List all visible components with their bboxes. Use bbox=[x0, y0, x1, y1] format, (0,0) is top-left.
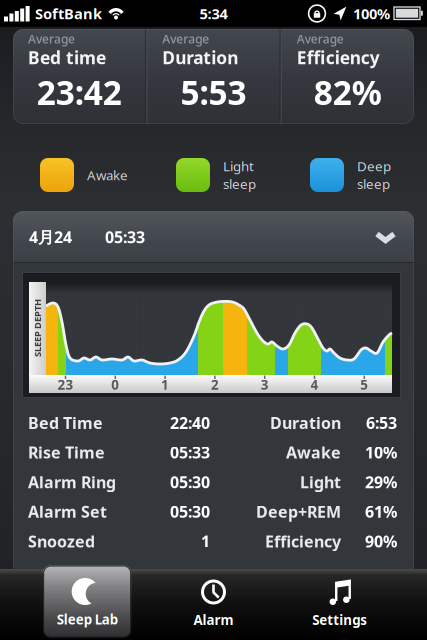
staticText: 05:33 bbox=[170, 442, 210, 463]
staticText: Light bbox=[300, 471, 341, 493]
button[interactable]: Sleep Lab bbox=[24, 568, 150, 640]
staticText: Average bbox=[28, 31, 75, 47]
staticText: 5:53 bbox=[180, 70, 246, 114]
staticText: 22:40 bbox=[170, 412, 210, 433]
staticText: 61% bbox=[365, 501, 397, 522]
staticText: SoftBank bbox=[35, 4, 102, 23]
staticText: 5:34 bbox=[199, 4, 227, 23]
staticText: 1 bbox=[201, 531, 210, 552]
staticText: Deep+REM bbox=[256, 501, 341, 522]
staticText: 05:30 bbox=[170, 501, 210, 522]
staticText: 23:42 bbox=[37, 70, 122, 114]
staticText: Alarm bbox=[193, 611, 233, 629]
staticText: 3 bbox=[261, 376, 269, 393]
staticText: Awake bbox=[286, 442, 341, 463]
staticText: Efficiency bbox=[265, 531, 341, 552]
staticText: 29% bbox=[365, 471, 397, 493]
button[interactable]: Settings bbox=[277, 569, 403, 640]
staticText: Snoozed bbox=[28, 531, 95, 552]
staticText: Efficiency bbox=[297, 46, 380, 69]
staticText: 100% bbox=[353, 4, 390, 23]
staticText: Bed Time bbox=[28, 412, 103, 433]
staticText: 2 bbox=[211, 376, 219, 393]
staticText: 5 bbox=[360, 376, 368, 393]
staticText: Awake bbox=[87, 166, 128, 184]
staticText: 05:30 bbox=[170, 471, 210, 493]
staticText: Average bbox=[297, 31, 344, 47]
staticText: 10% bbox=[365, 442, 397, 463]
staticText: Sleep Lab bbox=[57, 610, 118, 628]
staticText: SLEEP DEPTH bbox=[8, 322, 66, 334]
staticText: Duration bbox=[162, 46, 238, 69]
staticText: 1 bbox=[161, 376, 169, 393]
staticText: 4 bbox=[310, 376, 318, 393]
staticText: Light sleep bbox=[223, 157, 256, 193]
staticText: Settings bbox=[312, 611, 367, 629]
staticText: Average bbox=[162, 31, 209, 47]
staticText: Rise Time bbox=[28, 442, 105, 463]
staticText: 90% bbox=[365, 531, 397, 552]
staticText: Bed time bbox=[28, 46, 106, 69]
button[interactable]: Alarm bbox=[150, 569, 277, 640]
staticText: 05:33 bbox=[105, 226, 145, 248]
staticText: Alarm Ring bbox=[28, 471, 116, 493]
staticText: 4月24 bbox=[29, 226, 72, 248]
staticText: 0 bbox=[111, 376, 119, 393]
button[interactable]: Toggle night details bbox=[13, 211, 414, 263]
staticText: Duration bbox=[270, 412, 341, 433]
staticText: 23 bbox=[57, 376, 73, 393]
staticText: Deep sleep bbox=[357, 157, 391, 193]
staticText: 82% bbox=[314, 70, 382, 114]
staticText: 6:53 bbox=[366, 412, 397, 433]
staticText: Alarm Set bbox=[28, 501, 107, 522]
